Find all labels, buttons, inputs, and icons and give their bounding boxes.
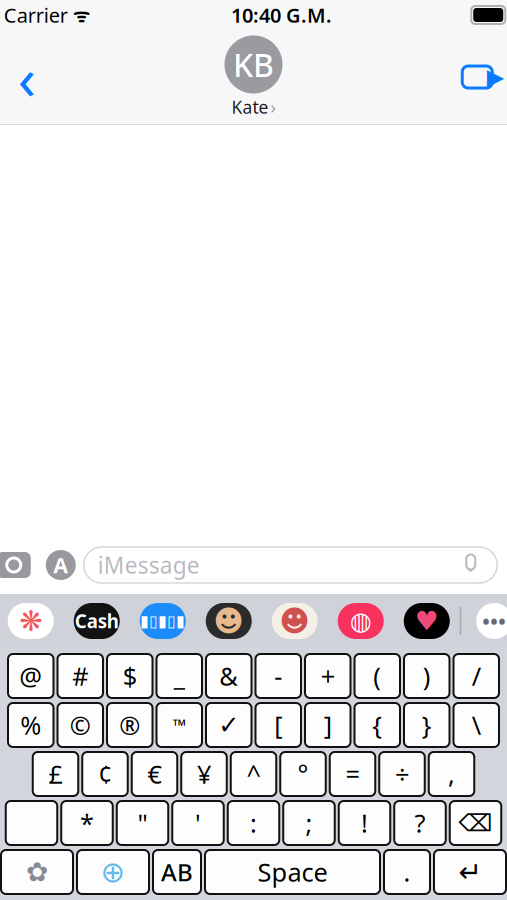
staticText: › — [270, 95, 275, 118]
staticText: : — [250, 806, 257, 840]
button[interactable]: % — [8, 703, 53, 747]
button[interactable]: } — [404, 703, 449, 747]
staticText: Space — [257, 855, 327, 889]
button[interactable]: App — [272, 603, 318, 639]
button[interactable]: ) — [404, 654, 449, 698]
staticText: ‹ — [18, 38, 36, 116]
button[interactable]: [ — [255, 703, 301, 747]
button[interactable]: @ — [8, 654, 53, 698]
staticText: ▶ — [487, 64, 504, 90]
staticText: € — [147, 757, 161, 791]
button[interactable]: / — [453, 654, 499, 698]
staticText: ; — [305, 806, 312, 840]
staticText: iMessage — [98, 550, 200, 580]
staticText: ⌄ — [462, 554, 479, 576]
button[interactable]: ^ — [231, 752, 276, 796]
staticText: = — [345, 757, 359, 791]
staticText: ⌫ — [458, 809, 492, 837]
staticText: KB — [233, 43, 274, 86]
button[interactable]: App — [8, 603, 54, 639]
staticText: ✓ — [218, 711, 239, 739]
staticText: ♥ — [415, 606, 439, 636]
button[interactable]: iMessage text field — [84, 547, 497, 583]
button[interactable]: { — [354, 703, 400, 747]
staticText: ^ — [246, 757, 260, 791]
staticText: Cash — [75, 609, 119, 633]
button[interactable]: . — [384, 850, 430, 894]
button[interactable]: ; — [283, 801, 335, 845]
button[interactable]: £ — [33, 752, 78, 796]
button[interactable]: € — [132, 752, 177, 796]
staticText: Kate — [231, 95, 268, 118]
button[interactable]: \ — [453, 703, 499, 747]
button[interactable]: Kate, contact details — [224, 35, 282, 118]
button[interactable]: FaceTime — [447, 47, 507, 107]
staticText: - — [274, 659, 282, 693]
staticText: ✿ — [26, 857, 48, 887]
button[interactable]: ¢ — [82, 752, 128, 796]
staticText: / — [472, 659, 481, 693]
staticText: © — [70, 708, 91, 742]
staticText: @ — [19, 659, 42, 693]
button[interactable]: , — [429, 752, 474, 796]
staticText: ' — [195, 806, 201, 840]
button[interactable]: $ — [107, 654, 152, 698]
staticText: ( — [373, 659, 381, 693]
button[interactable]: Camera — [0, 543, 38, 587]
button[interactable]: Space — [205, 850, 380, 894]
button[interactable]: ] — [305, 703, 350, 747]
button[interactable]: ! — [339, 801, 390, 845]
button[interactable]: App — [206, 603, 252, 639]
staticText: ! — [361, 806, 368, 840]
button[interactable]: ( — [354, 654, 400, 698]
button[interactable]: ' — [172, 801, 224, 845]
button[interactable]: # — [57, 654, 103, 698]
button[interactable]: : — [228, 801, 279, 845]
button[interactable]: + — [305, 654, 350, 698]
button[interactable]: App — [140, 603, 186, 639]
button[interactable]: AB — [153, 850, 201, 894]
button[interactable]: ⊕ — [77, 850, 149, 894]
staticText: { — [372, 708, 382, 742]
button[interactable]: App Store — [38, 543, 84, 587]
button[interactable]: © — [57, 703, 103, 747]
staticText: + — [321, 659, 335, 693]
button[interactable]: ¥ — [181, 752, 227, 796]
button[interactable]: App — [74, 603, 120, 639]
staticText: ••• — [482, 608, 506, 634]
button[interactable]: Key — [6, 801, 57, 845]
button[interactable]: ÷ — [379, 752, 425, 796]
button[interactable]: App — [404, 603, 450, 639]
button[interactable]: ™ — [156, 703, 202, 747]
button[interactable]: & — [206, 654, 251, 698]
button[interactable]: _ — [156, 654, 202, 698]
button[interactable]: ° — [280, 752, 326, 796]
button[interactable]: " — [117, 801, 168, 845]
staticText: & — [219, 659, 238, 693]
button[interactable]: ↵ — [434, 850, 506, 894]
staticText: ◍ — [350, 607, 372, 635]
staticText: [ — [274, 708, 282, 742]
staticText: , — [448, 757, 455, 791]
staticText: ÷ — [395, 757, 409, 791]
button[interactable]: ® — [107, 703, 152, 747]
button[interactable]: - — [255, 654, 301, 698]
staticText: ▮▯▮▯▮ — [140, 612, 185, 630]
button[interactable]: ⌫ — [450, 801, 501, 845]
button[interactable]: Back — [0, 47, 54, 107]
staticText: # — [72, 659, 88, 693]
button[interactable]: App — [338, 603, 384, 639]
button[interactable]: * — [61, 801, 113, 845]
staticText: ™ — [173, 713, 186, 736]
button[interactable]: ✓ — [206, 703, 251, 747]
staticText: ° — [297, 757, 308, 791]
button[interactable]: ✿ — [1, 850, 73, 894]
staticText: ⊕ — [100, 855, 125, 889]
staticText: AB — [161, 856, 193, 888]
staticText: £ — [48, 757, 62, 791]
button[interactable]: ? — [394, 801, 446, 845]
button[interactable]: More apps — [471, 603, 507, 639]
staticText: ) — [423, 659, 431, 693]
button[interactable]: = — [330, 752, 375, 796]
staticText: . — [403, 855, 410, 889]
